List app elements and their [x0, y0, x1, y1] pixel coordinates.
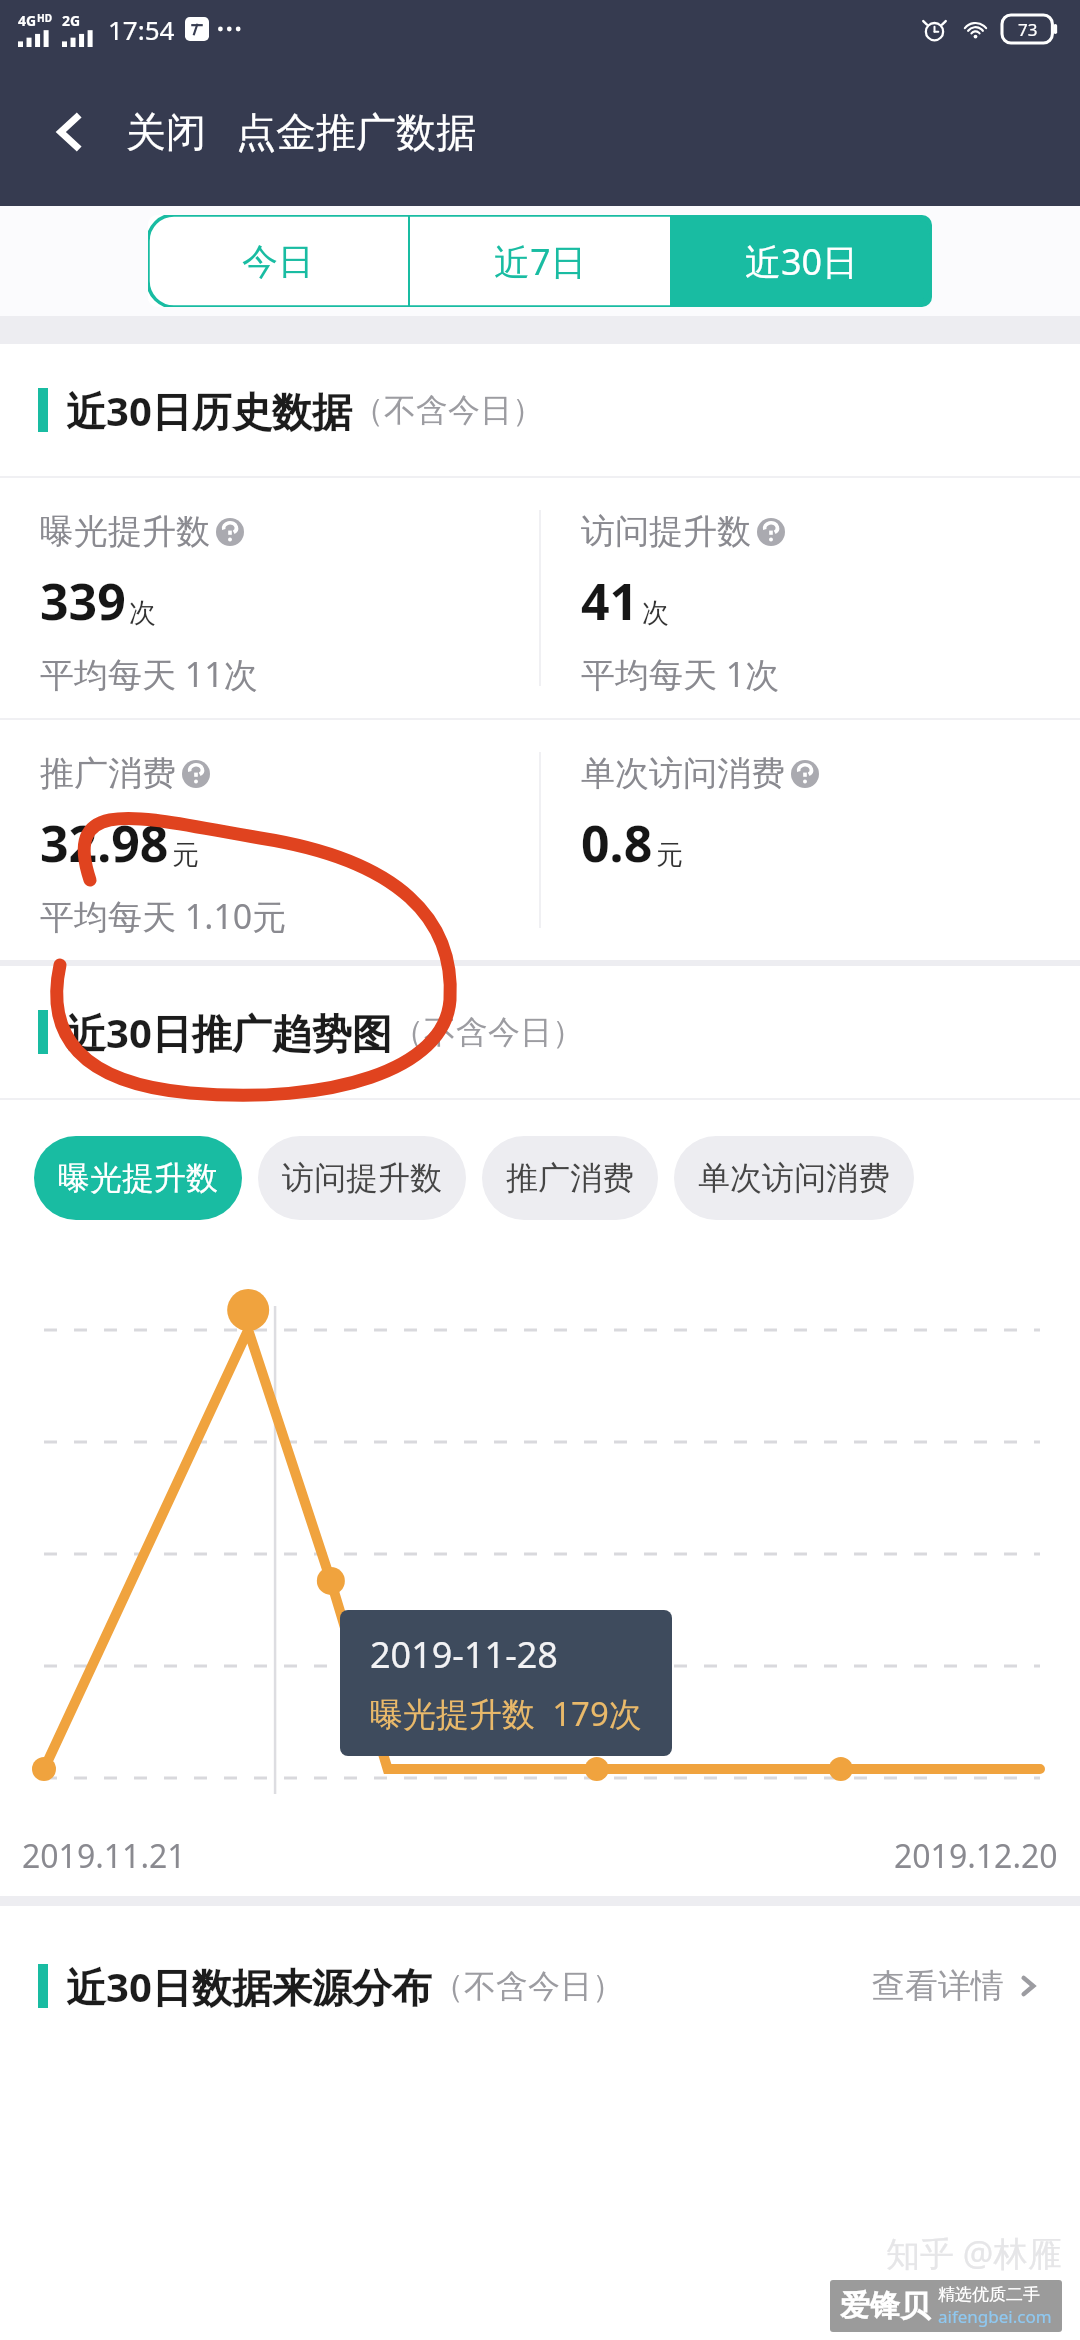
button[interactable]: 近7日 [410, 215, 670, 307]
button[interactable]: 曝光提升数 [34, 1136, 242, 1220]
button[interactable]: 今日 [148, 215, 408, 307]
staticText: 平均每天 1次 [581, 651, 780, 697]
staticText: 2G [62, 11, 81, 30]
button[interactable]: 近30日 [672, 215, 932, 307]
staticText: 0.8 [581, 809, 653, 877]
staticText: 17:54 [108, 12, 175, 47]
staticText: 元 [172, 838, 199, 872]
button[interactable]: 推广消费 [0, 720, 539, 960]
staticText: 4G [18, 11, 37, 30]
button[interactable]: 推广消费 [482, 1136, 658, 1220]
staticText: 2019.12.20 [894, 1834, 1058, 1878]
staticText: 查看详情 [872, 1965, 1004, 2007]
staticText: 单次访问消费 [698, 1158, 890, 1198]
staticText: （不含今日） [392, 1012, 584, 1052]
staticText: 单次访问消费 [581, 752, 785, 795]
staticText: 曝光提升数 [58, 1158, 218, 1198]
staticText: （不含今日） [432, 1966, 624, 2006]
staticText: 次 [642, 596, 669, 630]
staticText: 2019-11-28 [370, 1630, 558, 1679]
staticText: 近7日 [494, 237, 587, 286]
button[interactable]: 单次访问消费 [674, 1136, 914, 1220]
staticText: 点金推广数据 [236, 107, 476, 157]
staticText: 知乎 @林雁 [886, 2230, 1062, 2276]
staticText: 曝光提升数 179次 [370, 1691, 642, 1736]
staticText: 32.98 [40, 809, 169, 877]
staticText: HD [37, 11, 52, 25]
staticText: 近30日历史数据 [66, 383, 352, 438]
staticText: 近30日数据来源分布 [66, 1959, 432, 2014]
staticText: 41 [581, 567, 639, 635]
staticText: 关闭 [126, 107, 206, 157]
staticText: 2019.11.21 [22, 1834, 186, 1878]
staticText: 73 [1018, 18, 1038, 41]
staticText: 近30日推广趋势图 [66, 1005, 392, 1060]
button[interactable]: 查看详情 [864, 1957, 1048, 2015]
staticText: 访问提升数 [581, 510, 751, 553]
staticText: 访问提升数 [282, 1158, 442, 1198]
button[interactable]: Back [34, 96, 106, 168]
staticText: 曝光提升数 [40, 510, 210, 553]
staticText: 推广消费 [40, 752, 176, 795]
button[interactable]: 关闭 [120, 97, 212, 167]
staticText: 今日 [242, 239, 314, 284]
staticText: aifengbei.com [938, 2305, 1052, 2328]
staticText: （不含今日） [352, 390, 544, 430]
staticText: 平均每天 11次 [40, 651, 258, 697]
button[interactable]: 访问提升数 [258, 1136, 466, 1220]
staticText: 339 [40, 567, 126, 635]
staticText: 精选优质二手 [938, 2284, 1040, 2305]
staticText: 近30日 [745, 237, 859, 286]
staticText: 元 [656, 838, 683, 872]
button[interactable]: 访问提升数 [541, 478, 1080, 718]
staticText: 平均每天 1.10元 [40, 893, 287, 939]
button[interactable]: 单次访问消费 [541, 720, 1080, 960]
staticText: 爱锋贝 [840, 2287, 930, 2325]
staticText: 推广消费 [506, 1158, 634, 1198]
button[interactable]: 曝光提升数 [0, 478, 539, 718]
staticText: 次 [129, 596, 156, 630]
